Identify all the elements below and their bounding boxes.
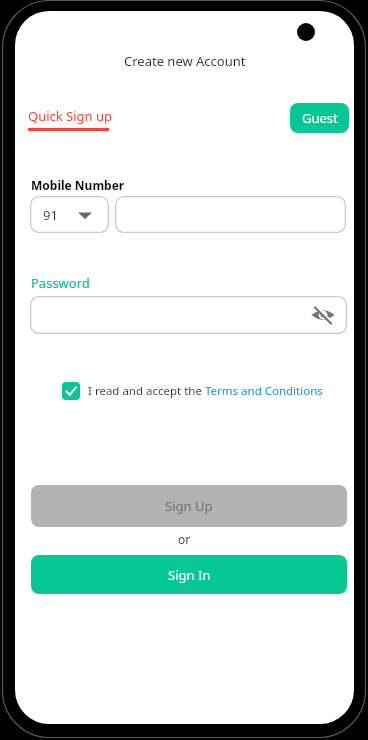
button[interactable]: Sign Up [31, 485, 347, 527]
staticText: 91 [43, 206, 58, 224]
button[interactable] [30, 296, 347, 334]
staticText: Sign In [168, 566, 211, 584]
button[interactable]: Guest [290, 103, 349, 133]
staticText: Create new Account [124, 52, 246, 70]
staticText: Sign Up [165, 497, 213, 515]
button[interactable]: 91 [30, 196, 109, 233]
staticText: Mobile Number [31, 177, 125, 193]
staticText: or [178, 531, 191, 547]
button[interactable]: Sign In [31, 555, 347, 594]
staticText: Guest [302, 109, 338, 127]
button[interactable]: Quick Sign up [28, 107, 113, 125]
button[interactable] [115, 196, 346, 233]
staticText: Password [31, 274, 90, 292]
button[interactable]: I read and accept the [62, 382, 323, 400]
staticText: Terms and Conditions [205, 383, 323, 399]
staticText: Quick Sign up [28, 107, 113, 125]
staticText: I read and accept the [88, 383, 205, 399]
